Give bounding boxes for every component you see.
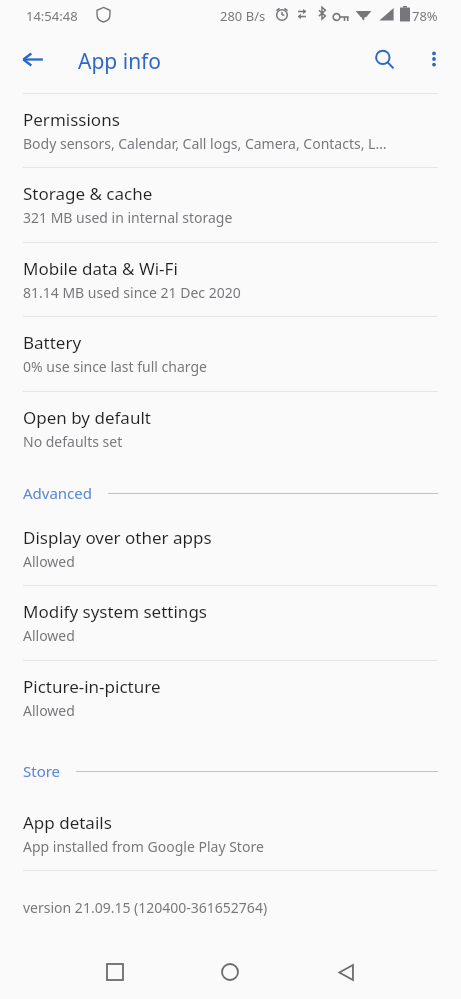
staticText: Mobile data & Wi‑Fi bbox=[23, 257, 178, 280]
button[interactable]: Back bbox=[321, 947, 371, 997]
staticText: 14:54:48 bbox=[26, 7, 78, 25]
staticText: Open by default bbox=[23, 406, 151, 429]
staticText: Advanced bbox=[23, 483, 93, 503]
staticText: Store bbox=[23, 761, 61, 781]
staticText: version 21.09.15 (120400-361652764) bbox=[23, 898, 268, 917]
staticText: 0% use since last full charge bbox=[23, 357, 207, 376]
staticText: Permissions bbox=[23, 108, 120, 131]
staticText: App installed from Google Play Store bbox=[23, 837, 264, 856]
staticText: App info bbox=[78, 47, 162, 76]
button[interactable]: Open by default bbox=[0, 391, 461, 465]
staticText: Picture-in-picture bbox=[23, 675, 161, 698]
button[interactable]: Picture-in-picture bbox=[0, 660, 461, 734]
button[interactable]: Recent apps bbox=[90, 947, 140, 997]
button[interactable]: Home bbox=[205, 947, 255, 997]
staticText: Allowed bbox=[23, 626, 75, 645]
button[interactable]: Back bbox=[10, 37, 55, 82]
staticText: Modify system settings bbox=[23, 600, 207, 623]
staticText: Battery bbox=[23, 331, 82, 354]
staticText: Body sensors, Calendar, Call logs, Camer… bbox=[23, 134, 387, 153]
staticText: 81.14 MB used since 21 Dec 2020 bbox=[23, 283, 241, 302]
button[interactable]: Storage & cache bbox=[0, 167, 461, 241]
staticText: 321 MB used in internal storage bbox=[23, 208, 233, 227]
staticText: Allowed bbox=[23, 552, 75, 571]
button[interactable]: Search bbox=[362, 37, 406, 81]
button[interactable]: App details bbox=[0, 796, 461, 870]
button[interactable]: Display over other apps bbox=[0, 511, 461, 585]
staticText: 78% bbox=[412, 7, 438, 25]
staticText: Display over other apps bbox=[23, 526, 212, 549]
button[interactable]: Modify system settings bbox=[0, 585, 461, 659]
button[interactable]: Battery bbox=[0, 316, 461, 390]
button[interactable]: Mobile data & Wi‑Fi bbox=[0, 242, 461, 316]
staticText: Storage & cache bbox=[23, 182, 153, 205]
staticText: App details bbox=[23, 811, 112, 834]
staticText: No defaults set bbox=[23, 432, 123, 451]
button[interactable]: More options bbox=[412, 37, 456, 81]
button[interactable]: Permissions bbox=[0, 93, 461, 167]
staticText: 280 B/s bbox=[220, 7, 266, 25]
staticText: Allowed bbox=[23, 701, 75, 720]
